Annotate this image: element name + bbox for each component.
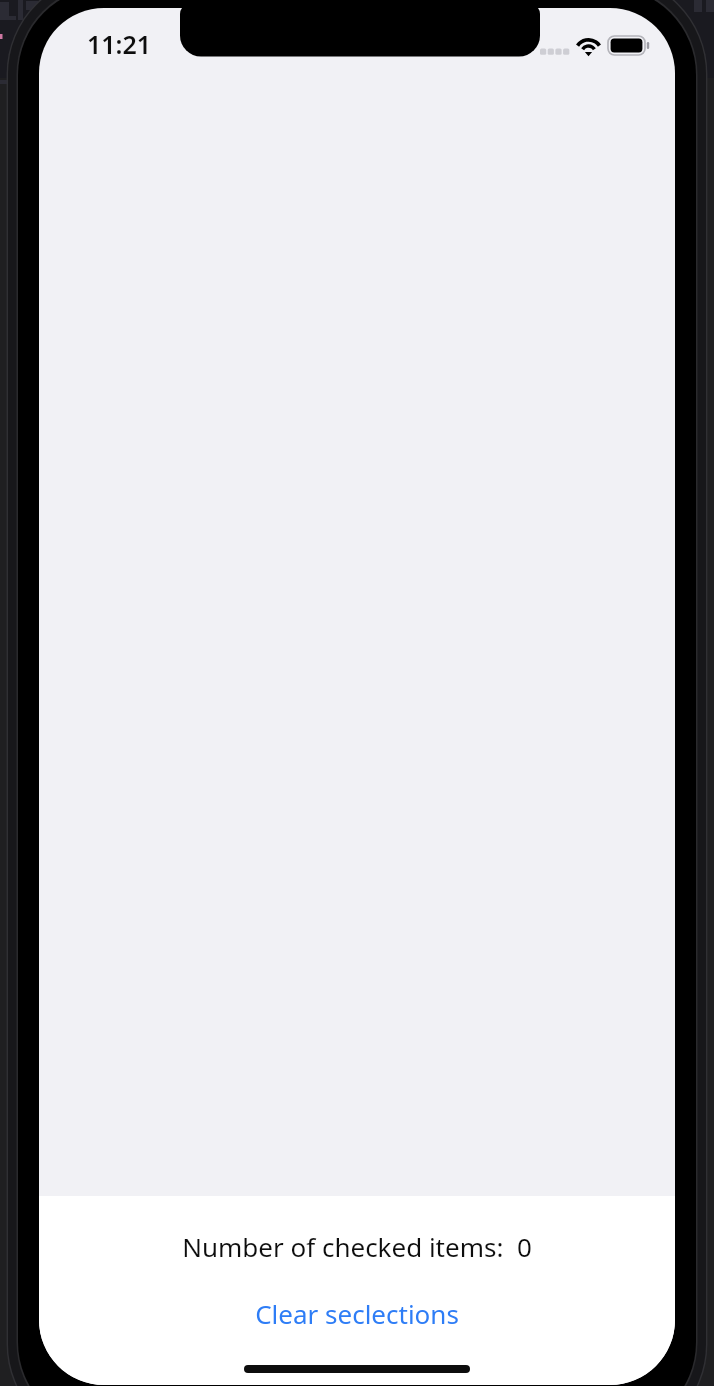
staticText: Number of checked items: 0 [39,1229,675,1264]
button[interactable]: Clear seclections [39,1285,675,1341]
staticText: Clear seclections [255,1296,459,1331]
other: Cellular, Wi-Fi and battery status [536,30,658,62]
staticText: 11:21 [87,27,152,61]
